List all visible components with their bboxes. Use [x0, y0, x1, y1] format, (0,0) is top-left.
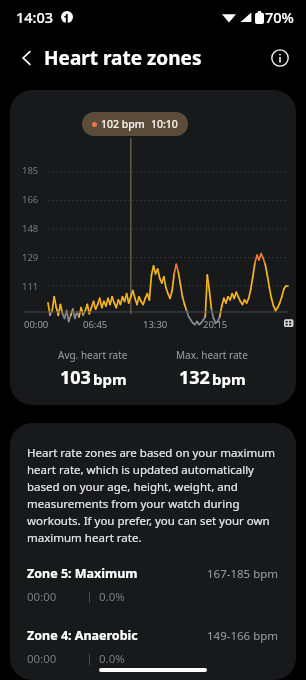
- staticText: 00:00: [27, 651, 57, 667]
- staticText: 166: [22, 193, 39, 206]
- staticText: 148: [22, 222, 39, 235]
- staticText: 167-185 bpm: [207, 566, 279, 582]
- staticText: bpm: [93, 369, 127, 389]
- staticText: 13:30: [143, 318, 168, 331]
- staticText: 06:45: [83, 318, 108, 331]
- staticText: 129: [22, 251, 39, 264]
- staticText: 00:00: [27, 589, 57, 605]
- staticText: 103: [60, 365, 91, 390]
- staticText: Heart rate zones: [44, 45, 202, 71]
- staticText: 102 bpm: [101, 117, 145, 131]
- staticText: 00:00: [24, 318, 49, 331]
- staticText: Avg. heart rate: [58, 348, 128, 362]
- staticText: 10:10: [151, 117, 178, 131]
- staticText: bpm: [212, 369, 246, 389]
- staticText: Zone 5: Maximum: [27, 565, 138, 582]
- staticText: 70%: [265, 7, 294, 27]
- staticText: 149-166 bpm: [207, 628, 279, 644]
- button[interactable]: Expand chart: [282, 316, 296, 330]
- staticText: 20:15: [203, 318, 228, 331]
- staticText: 132: [179, 365, 210, 390]
- button[interactable]: Zone 5: Maximum: [27, 565, 279, 605]
- button[interactable]: Zone 4: Anaerobic: [27, 627, 279, 667]
- staticText: Heart rate zones are based on your maxim…: [27, 445, 279, 545]
- staticText: Zone 4: Anaerobic: [27, 627, 138, 644]
- staticText: Max. heart rate: [176, 348, 248, 362]
- staticText: 14:03: [16, 7, 54, 27]
- button[interactable]: Information: [262, 40, 298, 76]
- staticText: 111: [22, 280, 39, 293]
- staticText: 0.0%: [99, 651, 125, 667]
- button[interactable]: Back: [10, 41, 44, 75]
- staticText: 185: [22, 164, 39, 177]
- staticText: 0.0%: [99, 589, 125, 605]
